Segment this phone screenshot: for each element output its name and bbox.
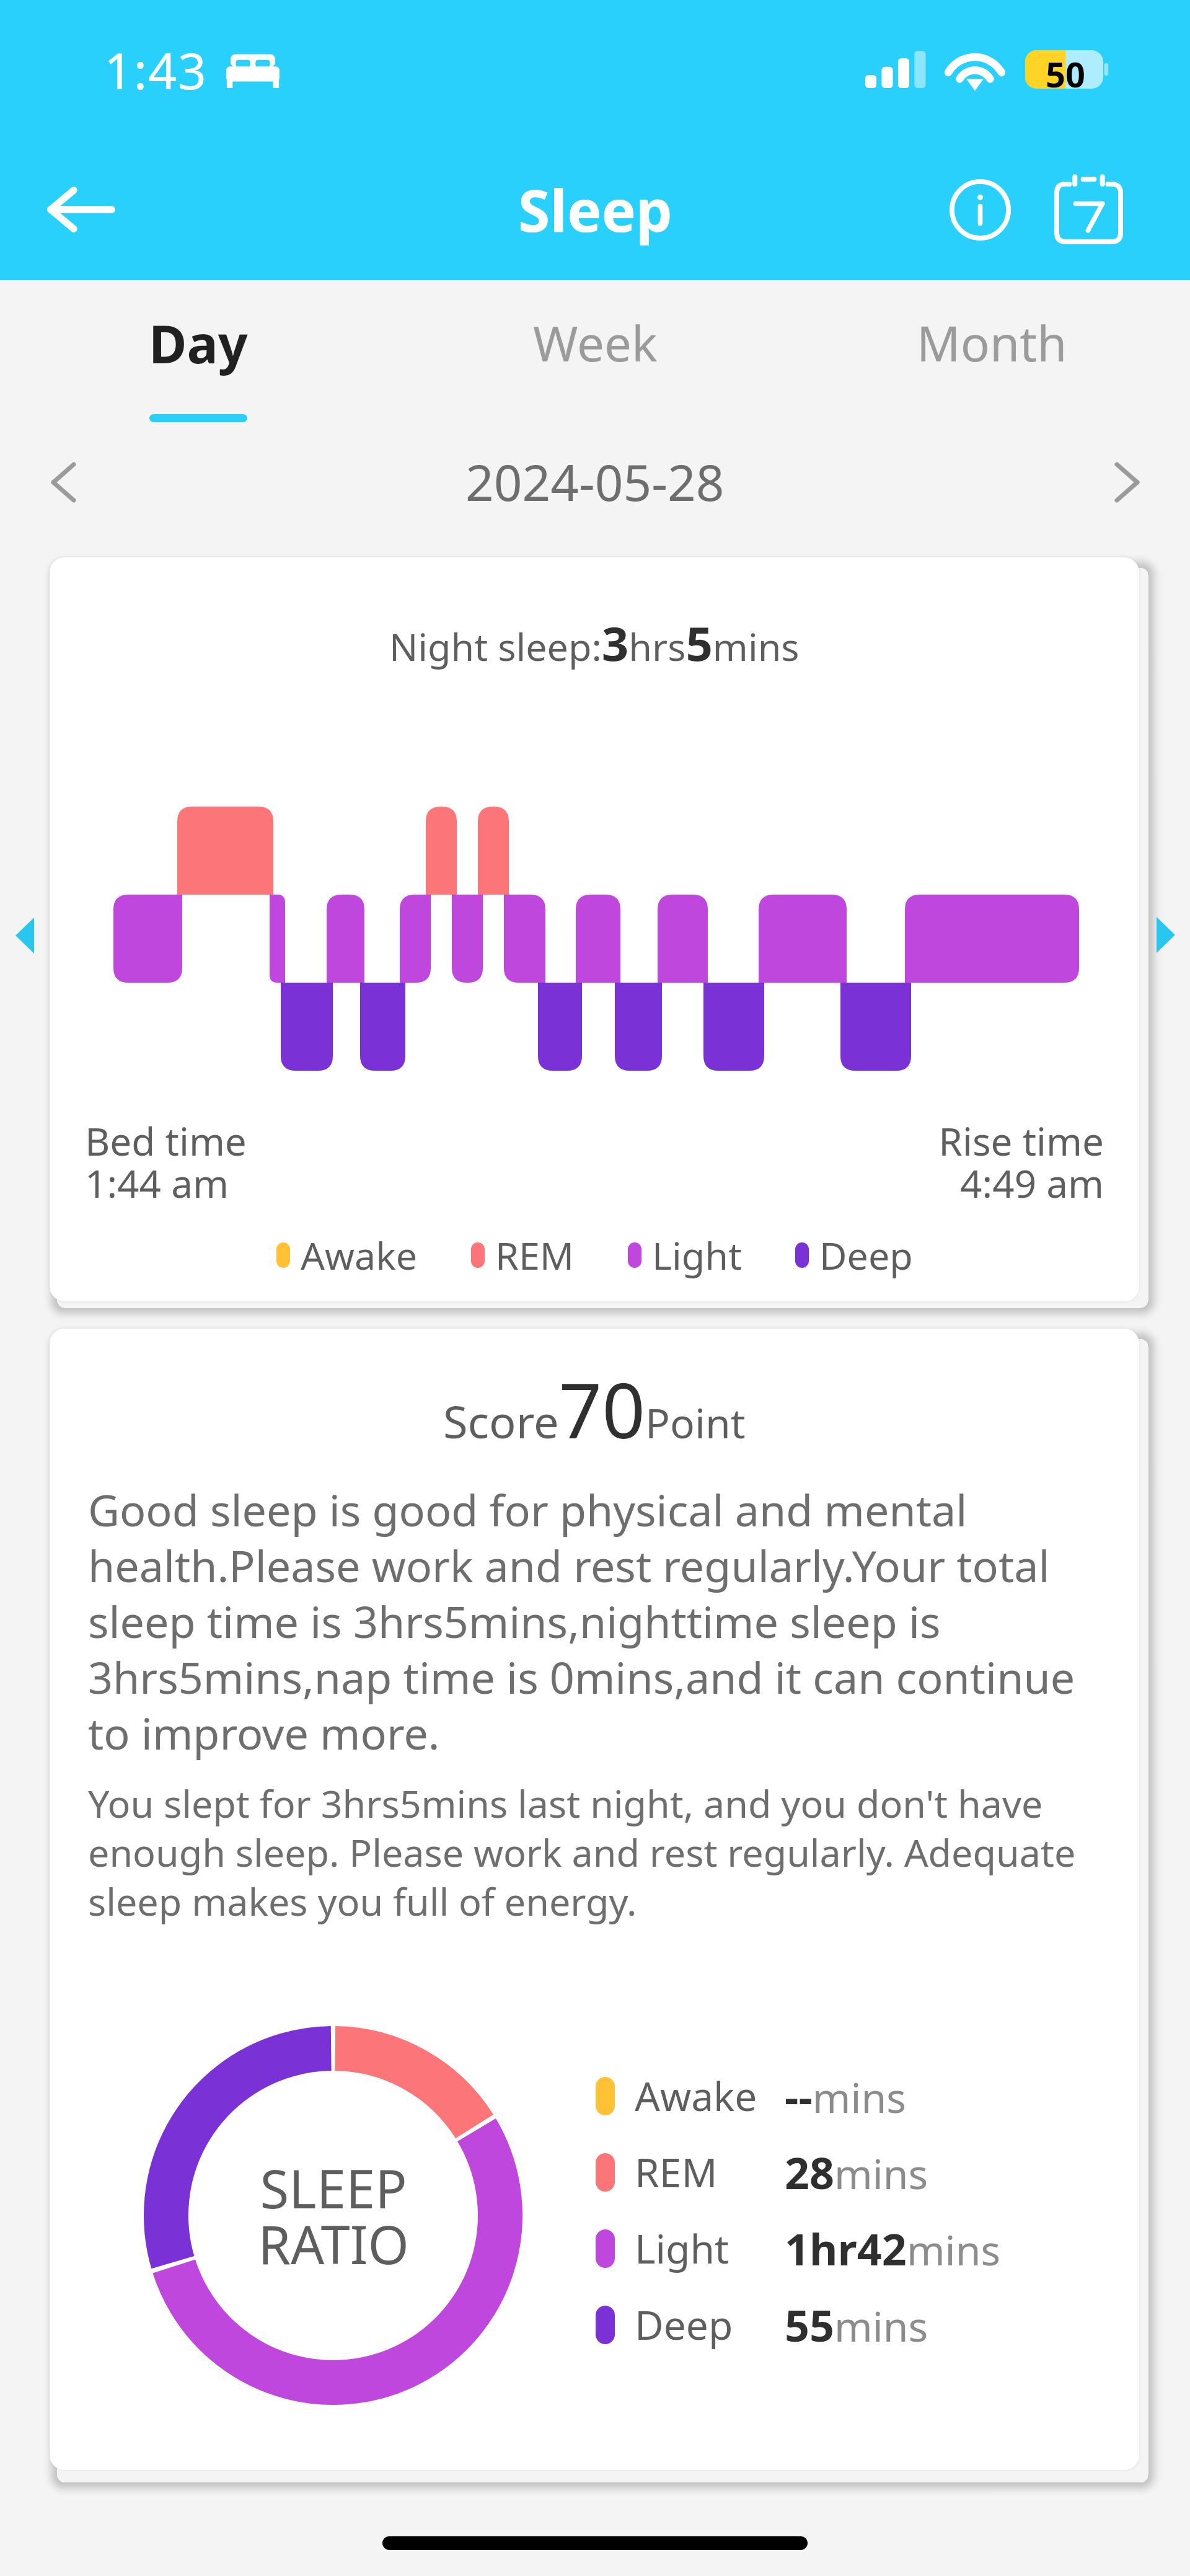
button[interactable]: Back — [34, 163, 127, 256]
staticText: 2024-05-28 — [465, 448, 725, 515]
button[interactable]: Calendar — [1042, 164, 1134, 255]
staticText: Score70Point — [443, 1358, 746, 1461]
staticText: Night sleep:3hrs5mins — [389, 611, 800, 675]
staticText: Sleep — [518, 170, 672, 249]
staticText: Month — [917, 310, 1067, 376]
staticText: You slept for 3hrs5mins last night, and … — [88, 1777, 1114, 1927]
staticText: SLEEP RATIO — [258, 2152, 409, 2280]
staticText: Awake — [635, 2069, 757, 2123]
button[interactable]: Next day — [1090, 445, 1164, 520]
button[interactable]: Week — [397, 308, 793, 376]
staticText: Light — [652, 1229, 742, 1281]
staticText: Awake — [301, 1229, 418, 1281]
staticText: 1hr42mins — [785, 2219, 1001, 2278]
staticText: Good sleep is good for physical and ment… — [88, 1480, 1114, 1762]
button[interactable]: Info — [934, 164, 1026, 255]
staticText: Deep — [635, 2298, 733, 2352]
button[interactable]: Previous day — [26, 445, 100, 520]
staticText: Light — [635, 2221, 729, 2275]
staticText: Rise time 4:49 am — [938, 1115, 1104, 1210]
staticText: 55mins — [785, 2295, 928, 2354]
staticText: REM — [635, 2145, 718, 2199]
staticText: REM — [495, 1229, 575, 1281]
staticText: 50 — [1046, 50, 1086, 89]
staticText: Bed time 1:44 am — [85, 1115, 247, 1210]
button[interactable]: Day — [0, 308, 397, 422]
staticText: Day — [149, 308, 248, 376]
staticText: Week — [533, 310, 658, 376]
staticText: --mins — [785, 2066, 906, 2125]
staticText: 28mins — [785, 2143, 928, 2202]
staticText: 1:43 — [104, 36, 208, 104]
staticText: Deep — [819, 1229, 913, 1281]
button[interactable]: Month — [793, 308, 1190, 376]
